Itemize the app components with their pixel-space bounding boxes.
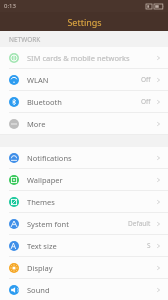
staticText: Display [27, 263, 156, 273]
button[interactable]: System font [0, 213, 168, 235]
button[interactable]: More [0, 113, 168, 135]
staticText: Settings [67, 16, 102, 28]
button[interactable]: Sound [0, 279, 168, 300]
button[interactable]: Notifications [0, 147, 168, 169]
staticText: Notifications [27, 153, 156, 163]
staticText: SIM cards & mobile networks [27, 53, 156, 63]
button[interactable]: Display [0, 257, 168, 279]
staticText: WLAN [27, 75, 141, 85]
staticText: Off [141, 75, 151, 84]
button[interactable]: SIM cards & mobile networks [0, 47, 168, 69]
staticText: NETWORK [9, 35, 41, 44]
staticText: Default [128, 219, 151, 228]
staticText: Sound [27, 285, 156, 295]
staticText: 0:13 [4, 2, 16, 10]
staticText: Themes [27, 197, 156, 207]
staticText: Wallpaper [27, 175, 156, 185]
staticText: S [147, 241, 151, 250]
button[interactable]: Themes [0, 191, 168, 213]
staticText: Text size [27, 241, 147, 251]
staticText: System font [27, 219, 128, 229]
button[interactable]: WLAN [0, 69, 168, 91]
staticText: More [27, 119, 156, 129]
button[interactable]: Bluetooth [0, 91, 168, 113]
button[interactable]: Wallpaper [0, 169, 168, 191]
button[interactable]: Text size [0, 235, 168, 257]
staticText: Off [141, 97, 151, 106]
staticText: Bluetooth [27, 97, 141, 107]
